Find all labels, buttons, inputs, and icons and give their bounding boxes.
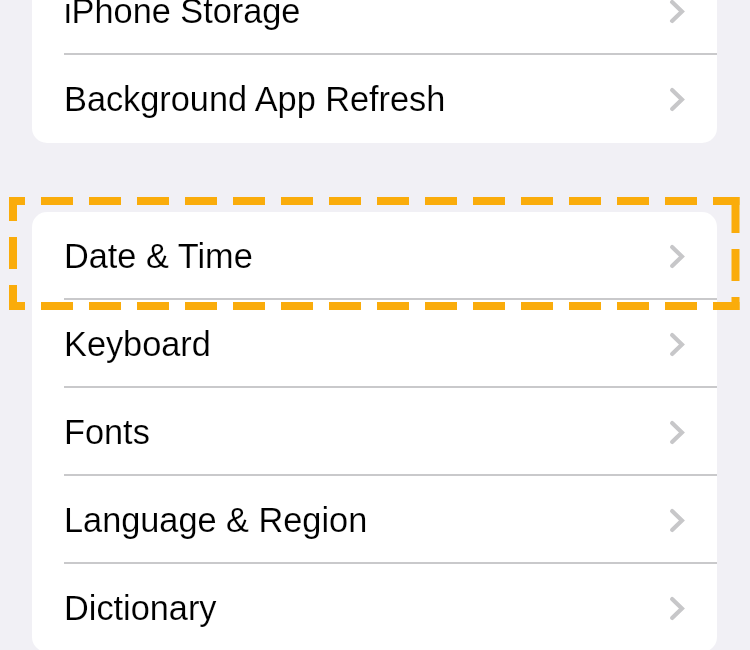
other: Open Fonts [670,421,684,444]
other: Open iPhone Storage [670,0,684,23]
staticText: Date & Time [64,237,670,275]
staticText: Dictionary [64,589,670,627]
staticText: Keyboard [64,325,670,363]
button[interactable]: Dictionary [32,564,717,650]
staticText: Fonts [64,413,670,451]
other: Open Keyboard [670,333,684,356]
other: Open Date & Time [670,245,684,268]
staticText: iPhone Storage [64,0,670,30]
button[interactable]: Date & Time [32,212,717,300]
other: Open Language & Region [670,509,684,532]
button[interactable]: Background App Refresh [32,55,717,143]
button[interactable]: Language & Region [32,476,717,564]
staticText: Language & Region [64,501,670,539]
button[interactable]: iPhone Storage [32,0,717,55]
other: Open Background App Refresh [670,88,684,111]
button[interactable]: Keyboard [32,300,717,388]
staticText: Background App Refresh [64,80,670,118]
button[interactable]: Fonts [32,388,717,476]
other: Open Dictionary [670,597,684,620]
